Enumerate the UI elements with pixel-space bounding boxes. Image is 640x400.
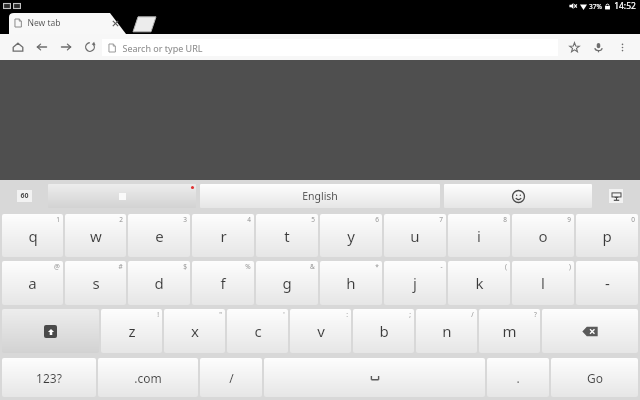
button[interactable]: g — [256, 261, 318, 305]
button[interactable]: . — [487, 358, 549, 397]
button[interactable]: d — [128, 261, 190, 305]
button[interactable]: Back — [30, 34, 54, 60]
button[interactable]: v — [290, 309, 351, 353]
staticText: 7 — [439, 215, 443, 224]
button[interactable]: s — [65, 261, 126, 305]
staticText: - — [440, 262, 443, 271]
staticText: 9 — [567, 215, 571, 224]
button[interactable]: Forward — [54, 34, 78, 60]
button[interactable]: Go — [551, 358, 638, 397]
staticText: " — [219, 310, 222, 319]
button[interactable]: Search or type URL — [102, 39, 558, 56]
staticText: @ — [54, 262, 60, 271]
button[interactable]: Home — [6, 34, 30, 60]
button[interactable]: More options — [610, 34, 634, 60]
staticText: a — [28, 273, 37, 293]
staticText: . — [516, 370, 520, 386]
staticText: m — [502, 321, 517, 341]
staticText: 37% — [589, 2, 602, 11]
button[interactable]: n — [416, 309, 477, 353]
staticText: k — [475, 273, 484, 293]
staticText: 3 — [183, 215, 187, 224]
staticText: s — [92, 273, 100, 293]
staticText: f — [220, 273, 226, 293]
staticText: / — [229, 370, 234, 386]
button[interactable]: Close tab — [111, 19, 120, 28]
staticText: ( — [505, 262, 507, 271]
staticText: / — [471, 310, 474, 319]
staticText: j — [413, 273, 417, 293]
staticText: n — [442, 321, 452, 341]
staticText: 5 — [311, 215, 315, 224]
button[interactable]: 123? — [2, 358, 96, 397]
staticText: x — [191, 321, 199, 341]
button[interactable]: Space — [264, 358, 485, 397]
staticText: 123? — [36, 370, 62, 386]
button[interactable]: Language count — [2, 180, 46, 212]
staticText: New tab — [27, 17, 61, 29]
button[interactable]: c — [227, 309, 288, 353]
staticText: ! — [157, 310, 159, 319]
button[interactable]: w — [65, 214, 126, 257]
button[interactable]: .com — [98, 358, 198, 397]
button[interactable]: h — [320, 261, 382, 305]
staticText: $ — [183, 262, 187, 271]
staticText: t — [284, 226, 290, 246]
staticText: i — [477, 226, 481, 246]
staticText: # — [118, 262, 123, 271]
staticText: z — [128, 321, 136, 341]
staticText: 6 — [375, 215, 379, 224]
button[interactable]: l — [512, 261, 574, 305]
staticText: 2 — [119, 215, 123, 224]
button[interactable]: - — [576, 261, 638, 305]
staticText: e — [155, 226, 164, 246]
button[interactable]: Shift — [2, 309, 99, 353]
staticText: q — [28, 226, 38, 246]
staticText: 0 — [631, 215, 635, 224]
button[interactable]: Emoji — [444, 184, 592, 208]
button[interactable]: t — [256, 214, 318, 257]
button[interactable]: u — [384, 214, 446, 257]
button[interactable]: Backspace — [542, 309, 638, 353]
button[interactable]: q — [2, 214, 63, 257]
button[interactable]: z — [101, 309, 162, 353]
staticText: Go — [587, 370, 603, 386]
button[interactable]: k — [448, 261, 510, 305]
button[interactable]: Reload — [78, 34, 102, 60]
button[interactable]: New tab — [6, 12, 126, 34]
button[interactable]: Switch keyboard — [594, 180, 638, 212]
button[interactable]: a — [2, 261, 63, 305]
staticText: w — [90, 226, 102, 246]
staticText: ? — [534, 310, 537, 319]
button[interactable]: e — [128, 214, 190, 257]
staticText: u — [410, 226, 420, 246]
button[interactable]: English — [200, 184, 440, 208]
button[interactable]: m — [479, 309, 540, 353]
button[interactable]: f — [192, 261, 254, 305]
staticText: - — [605, 273, 610, 293]
staticText: v — [317, 321, 325, 341]
button[interactable]: Bookmark — [562, 34, 586, 60]
staticText: * — [375, 262, 379, 271]
button[interactable]: r — [192, 214, 254, 257]
button[interactable]: / — [200, 358, 262, 397]
staticText: y — [347, 226, 355, 246]
button[interactable]: New tab — [127, 12, 157, 34]
button[interactable]: p — [576, 214, 638, 257]
button[interactable]: x — [164, 309, 225, 353]
button[interactable]: y — [320, 214, 382, 257]
staticText: ' — [283, 310, 285, 319]
button[interactable]: i — [448, 214, 510, 257]
staticText: o — [538, 226, 548, 246]
button[interactable]: o — [512, 214, 574, 257]
button[interactable]: Voice search — [586, 34, 610, 60]
staticText: p — [602, 226, 612, 246]
staticText: 60 — [20, 191, 29, 201]
staticText: h — [346, 273, 356, 293]
button[interactable]: j — [384, 261, 446, 305]
staticText: : — [346, 310, 348, 319]
button[interactable]: Suggestion — [48, 184, 196, 208]
button[interactable]: b — [353, 309, 414, 353]
staticText: l — [541, 273, 545, 293]
staticText: 4 — [247, 215, 251, 224]
